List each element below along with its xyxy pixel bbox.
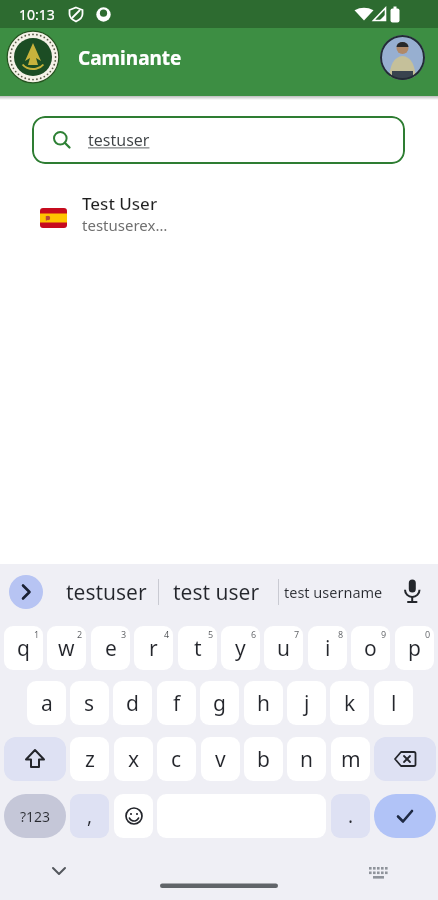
staticText: e (105, 634, 117, 663)
button[interactable]: s (70, 681, 109, 725)
staticText: 3 (121, 628, 127, 640)
staticText: d (126, 689, 139, 718)
button[interactable]: y (221, 626, 260, 670)
button[interactable]: v (201, 737, 240, 781)
staticText: 4 (164, 628, 170, 640)
button[interactable]: e (91, 626, 130, 670)
staticText: 2 (77, 628, 83, 640)
button[interactable]: j (287, 681, 326, 725)
staticText: y (235, 634, 246, 663)
button[interactable] (114, 794, 153, 838)
button[interactable] (4, 737, 66, 781)
button[interactable]: x (114, 737, 153, 781)
staticText: k (344, 689, 356, 718)
staticText: test user (173, 578, 260, 607)
button[interactable]: testuser (56, 575, 156, 609)
button[interactable]: Test User (0, 192, 438, 235)
staticText: w (58, 634, 75, 663)
button[interactable]: test user (166, 575, 266, 609)
staticText: m (341, 745, 361, 774)
staticText: q (17, 634, 30, 663)
staticText: f (173, 689, 181, 718)
staticText: Caminante (78, 45, 182, 71)
button[interactable]: f (157, 681, 196, 725)
staticText: . (348, 803, 354, 829)
staticText: testuser (66, 578, 147, 607)
button[interactable]: d (113, 681, 152, 725)
button[interactable]: i (308, 626, 347, 670)
staticText: ?123 (20, 807, 51, 826)
button[interactable]: z (70, 737, 109, 781)
button[interactable]: k (330, 681, 369, 725)
button[interactable]: c (157, 737, 196, 781)
staticText: 8 (338, 628, 344, 640)
staticText: s (84, 689, 95, 718)
button[interactable]: g (200, 681, 239, 725)
staticText: u (277, 634, 290, 663)
staticText: testuserex… (82, 215, 168, 235)
staticText: p (408, 634, 421, 663)
button[interactable] (401, 577, 423, 607)
button[interactable]: b (244, 737, 283, 781)
button[interactable]: p (395, 626, 434, 670)
button[interactable]: , (70, 794, 109, 838)
button[interactable] (9, 575, 43, 609)
staticText: j (304, 689, 310, 718)
staticText: x (128, 745, 140, 774)
button[interactable] (380, 35, 425, 80)
staticText: 7 (294, 628, 300, 640)
staticText: c (171, 745, 182, 774)
button[interactable]: m (331, 737, 370, 781)
staticText: g (213, 689, 226, 718)
staticText: 9 (381, 628, 387, 640)
staticText: t (194, 634, 202, 663)
button[interactable]: w (47, 626, 86, 670)
button[interactable]: a (27, 681, 66, 725)
button[interactable] (374, 737, 436, 781)
button[interactable]: ?123 (4, 794, 66, 838)
staticText: z (85, 745, 95, 774)
staticText: l (391, 689, 397, 718)
staticText: r (149, 634, 158, 663)
button[interactable]: l (374, 681, 413, 725)
staticText: b (257, 745, 270, 774)
staticText: 0 (425, 628, 431, 640)
button[interactable]: t (178, 626, 217, 670)
staticText: i (325, 634, 331, 663)
staticText: 6 (251, 628, 257, 640)
button[interactable]: o (351, 626, 390, 670)
staticText: 5 (208, 628, 214, 640)
staticText: a (41, 689, 53, 718)
button[interactable] (374, 794, 436, 838)
staticText: n (300, 745, 313, 774)
button[interactable]: h (244, 681, 283, 725)
button[interactable]: testuser (32, 116, 405, 164)
button[interactable]: test username (283, 578, 383, 606)
button[interactable]: r (134, 626, 173, 670)
staticText: testuser (88, 129, 150, 151)
button[interactable]: n (287, 737, 326, 781)
staticText: v (215, 745, 226, 774)
button[interactable]: q (4, 626, 43, 670)
staticText: Test User (82, 192, 158, 215)
staticText: , (87, 803, 93, 829)
button[interactable]: . (331, 794, 370, 838)
button[interactable]: u (264, 626, 303, 670)
staticText: test username (284, 582, 383, 602)
staticText: 1 (34, 628, 40, 640)
staticText: o (364, 634, 377, 663)
staticText: 10:13 (19, 5, 55, 24)
staticText: h (257, 689, 270, 718)
